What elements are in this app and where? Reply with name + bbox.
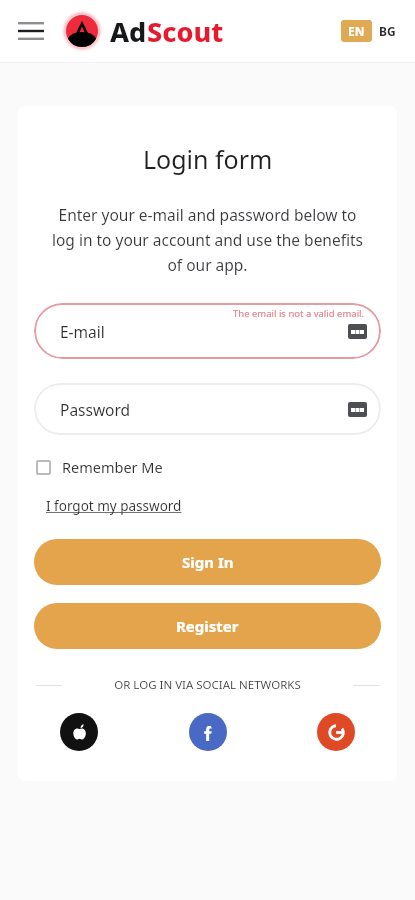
staticText: Ad	[110, 13, 147, 50]
button[interactable]: Sign In	[34, 539, 381, 585]
staticText: Password	[60, 399, 131, 420]
button[interactable]: Sign in with Facebook	[189, 713, 227, 751]
button[interactable]: I forgot my password	[46, 497, 182, 515]
staticText: The email is not a valid email.	[233, 307, 365, 320]
button[interactable]: Ad	[62, 11, 224, 51]
staticText: Remember Me	[62, 457, 163, 477]
staticText: Sign In	[182, 552, 234, 572]
button[interactable]: Register	[34, 603, 381, 649]
button[interactable]: Password	[34, 383, 381, 435]
staticText: Login form	[143, 142, 273, 176]
staticText: OR LOG IN VIA SOCIAL NETWORKS	[68, 677, 347, 693]
staticText: E-mail	[60, 321, 105, 342]
button[interactable]: Remember Me	[34, 457, 381, 477]
staticText: BG	[379, 23, 396, 39]
button[interactable]: EN	[341, 20, 372, 42]
staticText: I forgot my password	[46, 497, 182, 515]
button[interactable]: E-mail	[34, 303, 381, 359]
staticText: Register	[176, 616, 239, 636]
staticText: Scout	[147, 13, 224, 50]
staticText: EN	[348, 23, 365, 39]
button[interactable]: Sign in with Apple	[60, 713, 98, 751]
button[interactable]: Sign in with Google	[317, 713, 355, 751]
button[interactable]: BG	[372, 20, 403, 42]
other: Autofill	[348, 402, 367, 417]
button[interactable]: Menu	[8, 8, 54, 54]
staticText: Enter your e-mail and password below to …	[48, 204, 367, 275]
other: Autofill	[348, 324, 367, 339]
